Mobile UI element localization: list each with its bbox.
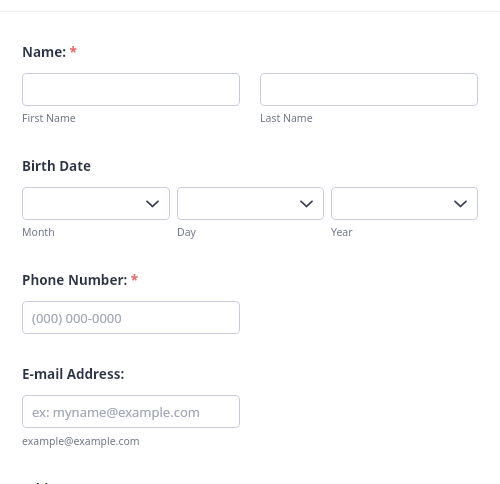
- staticText: Year: [331, 225, 353, 239]
- staticText: example@example.com: [22, 434, 140, 448]
- staticText: Day: [177, 225, 196, 239]
- staticText: Address: [22, 480, 76, 484]
- staticText: Name: *: [22, 43, 77, 61]
- staticText: ex: myname@example.com: [32, 403, 200, 421]
- staticText: (000) 000-0000: [32, 309, 122, 327]
- staticText: First Name: [22, 111, 76, 125]
- staticText: Month: [22, 225, 55, 239]
- button[interactable]: Day: [177, 187, 324, 220]
- button[interactable]: E-mail Address: [22, 395, 240, 428]
- button[interactable]: Phone Number: [22, 301, 240, 334]
- button[interactable]: Year: [331, 187, 478, 220]
- button[interactable]: First Name: [22, 73, 240, 106]
- staticText: Phone Number: *: [22, 271, 139, 289]
- staticText: E-mail Address:: [22, 365, 125, 383]
- staticText: Last Name: [260, 111, 313, 125]
- button[interactable]: Month: [22, 187, 170, 220]
- button[interactable]: Last Name: [260, 73, 478, 106]
- staticText: Birth Date: [22, 157, 92, 175]
